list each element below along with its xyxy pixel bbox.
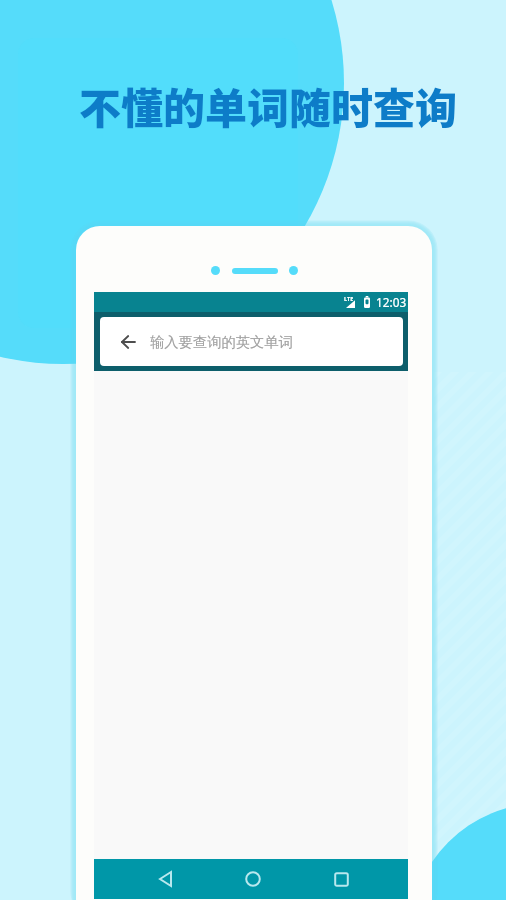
button[interactable]: Home [229, 859, 277, 899]
staticText: LTE [344, 295, 354, 302]
button[interactable]: Recents [317, 859, 365, 899]
button[interactable]: Back [114, 328, 142, 356]
staticText: 不懂的单词随时查询 [15, 75, 506, 136]
staticText: 输入要查询的英文单词 [150, 333, 293, 351]
button[interactable]: Back [100, 317, 403, 366]
staticText: 12:03 [376, 294, 407, 310]
button[interactable]: Back [141, 859, 189, 899]
